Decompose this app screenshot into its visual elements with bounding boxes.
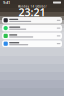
staticText: 23:21 — [18, 5, 45, 19]
button[interactable] — [2, 25, 62, 31]
button[interactable] — [2, 33, 62, 39]
staticText: 9:41 — [3, 0, 10, 5]
button[interactable] — [2, 17, 62, 24]
staticText: Monday, 14 October — [17, 5, 46, 8]
button[interactable] — [2, 40, 62, 47]
